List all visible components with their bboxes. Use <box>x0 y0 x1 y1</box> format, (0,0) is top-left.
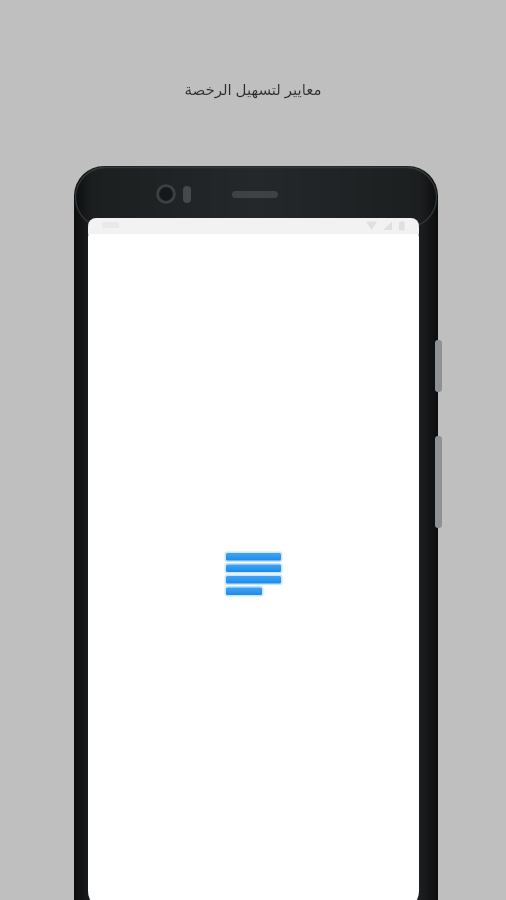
button[interactable]: App logo <box>222 549 284 599</box>
button[interactable]: معايير لتسهيل الرخصة <box>176 77 330 101</box>
staticText: معايير لتسهيل الرخصة <box>184 79 322 99</box>
